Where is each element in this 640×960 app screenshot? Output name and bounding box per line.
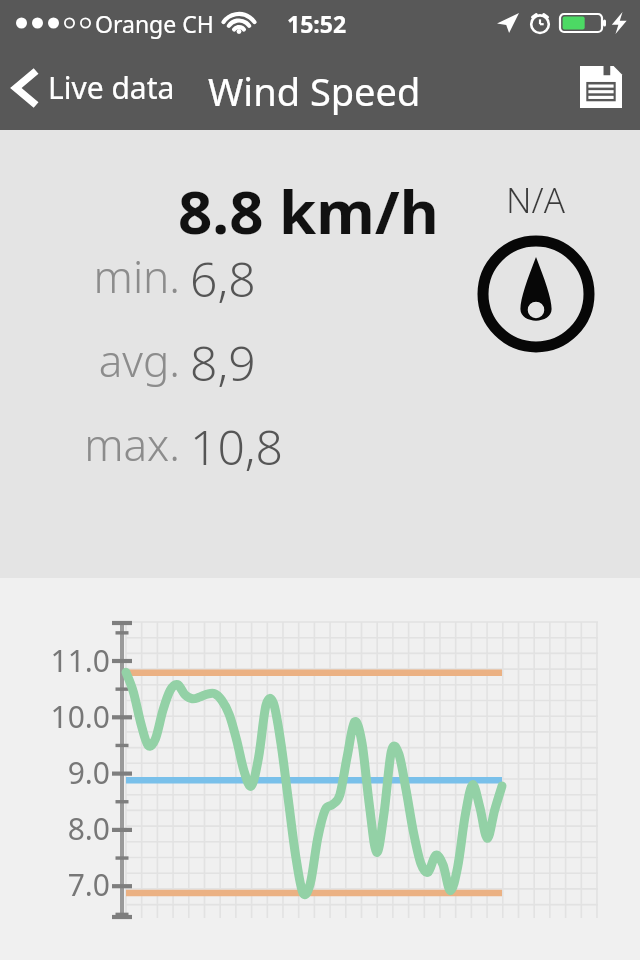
staticText: Live data <box>48 67 175 108</box>
staticText: Orange CH <box>95 8 214 39</box>
staticText: 8,9 <box>190 330 256 395</box>
staticText: 15:52 <box>287 8 347 39</box>
staticText: max. <box>0 414 180 474</box>
staticText: 6,8 <box>190 246 256 311</box>
staticText: 10.0 <box>30 696 110 737</box>
button[interactable]: Wind direction gauge <box>478 236 594 352</box>
staticText: 9.0 <box>30 752 110 793</box>
button[interactable]: Save <box>562 52 640 122</box>
staticText: 8.8 km/h <box>178 170 439 252</box>
staticText: 10,8 <box>190 414 284 479</box>
staticText: 8.0 <box>30 808 110 849</box>
staticText: avg. <box>0 330 180 390</box>
staticText: 11.0 <box>30 640 110 681</box>
button[interactable]: Live data <box>0 59 185 116</box>
staticText: Wind Speed <box>208 65 421 117</box>
staticText: N/A <box>506 176 565 224</box>
staticText: min. <box>0 246 180 306</box>
staticText: 7.0 <box>30 864 110 905</box>
